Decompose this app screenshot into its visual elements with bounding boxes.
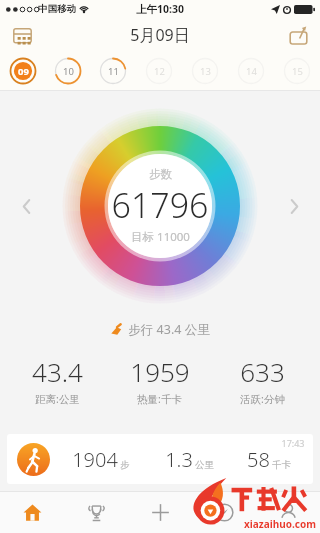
button[interactable]: 1959 [108,354,211,406]
staticText: 距离:公里 [35,392,80,406]
button[interactable]: Calendar [7,20,37,50]
staticText: 1959 [130,354,190,389]
button[interactable]: 步行 43.4 公里 [0,321,320,338]
button[interactable]: 633 [211,354,314,406]
staticText: 09 [18,65,29,78]
button[interactable]: Home [0,491,64,533]
staticText: 1904 [72,446,118,473]
button[interactable]: Previous day [13,193,39,219]
staticText: 11 [108,65,119,78]
button[interactable]: Profile [256,491,320,533]
staticText: 58 [247,446,270,473]
staticText: 17:43 [281,437,305,449]
staticText: 步数 [149,167,172,181]
button[interactable]: Discover [192,491,256,533]
button[interactable]: Achievements [64,491,128,533]
staticText: 热量:千卡 [137,392,182,406]
staticText: 中国移动 [38,3,76,15]
staticText: 目标 11000 [131,229,190,245]
staticText: 上午10:30 [136,2,184,16]
button[interactable]: 1904 [7,434,313,484]
button[interactable]: 43.4 [6,354,108,406]
staticText: 43.4 [32,354,83,389]
staticText: 14 [246,65,257,78]
button[interactable]: 09 [0,51,45,90]
staticText: 61796 [111,182,209,228]
button[interactable]: Next day [281,193,307,219]
button[interactable]: 11 [90,51,136,90]
staticText: 1.3 [165,446,193,473]
staticText: 活跃:分钟 [240,392,285,406]
staticText: 步 [120,459,130,471]
button[interactable]: 14 [228,51,274,90]
staticText: xiazaihuo.com [244,517,316,531]
staticText: 步行 43.4 公里 [128,321,210,338]
staticText: 13 [200,65,211,78]
staticText: 12 [154,65,165,78]
staticText: 10 [63,65,74,78]
button[interactable]: Add [128,491,192,533]
staticText: 公里 [195,459,214,471]
staticText: 633 [240,354,285,389]
staticText: 15 [292,65,303,78]
staticText: 5月09日 [130,24,190,46]
button[interactable]: 10 [45,51,90,90]
button[interactable]: Share [283,20,313,50]
staticText: 千卡 [272,459,291,471]
